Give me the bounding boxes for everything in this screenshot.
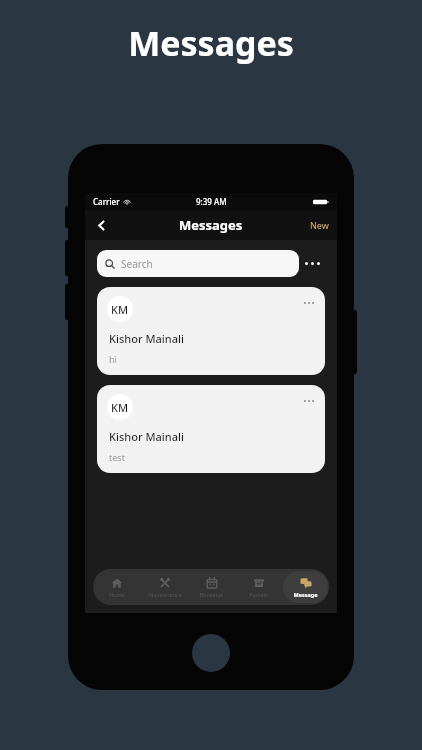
staticText: Maintenance <box>148 591 182 598</box>
button[interactable]: Message <box>283 571 328 603</box>
staticText: Kishor Mainali <box>109 331 184 346</box>
staticText: Messages <box>179 216 243 234</box>
staticText: Parcels <box>249 591 268 598</box>
button[interactable]: More options <box>299 250 325 277</box>
button[interactable]: Home <box>94 571 140 603</box>
staticText: Search <box>121 257 153 271</box>
button[interactable]: Maintenance <box>142 571 187 603</box>
button[interactable]: KM <box>97 385 325 473</box>
button[interactable]: Message options <box>299 391 319 411</box>
other: Home button <box>192 634 230 672</box>
button[interactable]: Message options <box>299 293 319 313</box>
staticText: test <box>109 451 125 463</box>
staticText: Message <box>293 591 318 598</box>
button[interactable]: Bookings <box>189 571 234 603</box>
staticText: Bookings <box>199 591 224 598</box>
staticText: Home <box>109 591 125 598</box>
staticText: 9:39 AM <box>196 196 227 207</box>
staticText: KM <box>111 302 129 317</box>
staticText: Kishor Mainali <box>109 429 184 444</box>
button[interactable]: Parcels <box>236 571 281 603</box>
staticText: KM <box>111 400 129 415</box>
button[interactable]: KM <box>97 287 325 375</box>
staticText: New <box>310 219 329 231</box>
staticText: Carrier <box>93 196 120 207</box>
button[interactable]: New <box>310 219 329 231</box>
button[interactable]: Back <box>89 213 113 237</box>
staticText: Messages <box>128 20 294 66</box>
staticText: hi <box>109 353 117 365</box>
button[interactable]: Search <box>97 250 299 277</box>
